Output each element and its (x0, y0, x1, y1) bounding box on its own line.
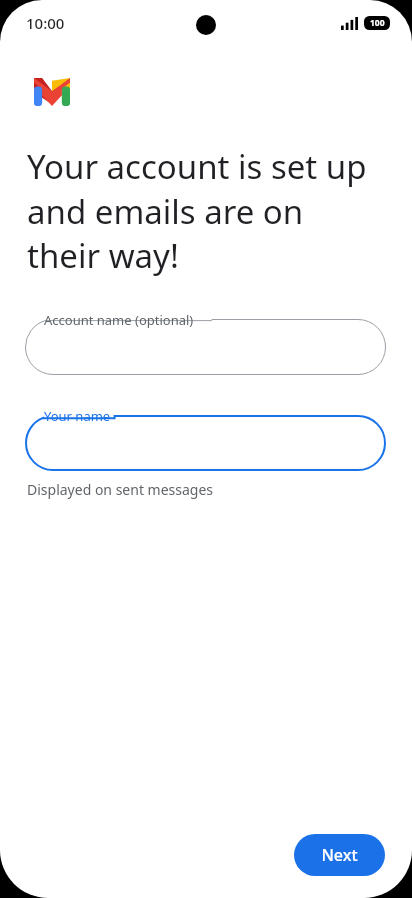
button[interactable]: Account name (optional) (25, 319, 386, 375)
staticText: Next (321, 844, 358, 866)
staticText: 100 (370, 17, 385, 29)
staticText: Your name (44, 407, 111, 425)
staticText: Displayed on sent messages (27, 480, 214, 499)
staticText: Account name (optional) (44, 311, 194, 329)
button[interactable]: Next (294, 834, 385, 876)
button[interactable]: Your name (25, 415, 386, 471)
staticText: Your account is set up and emails are on… (27, 144, 382, 277)
staticText: 10:00 (26, 13, 65, 33)
